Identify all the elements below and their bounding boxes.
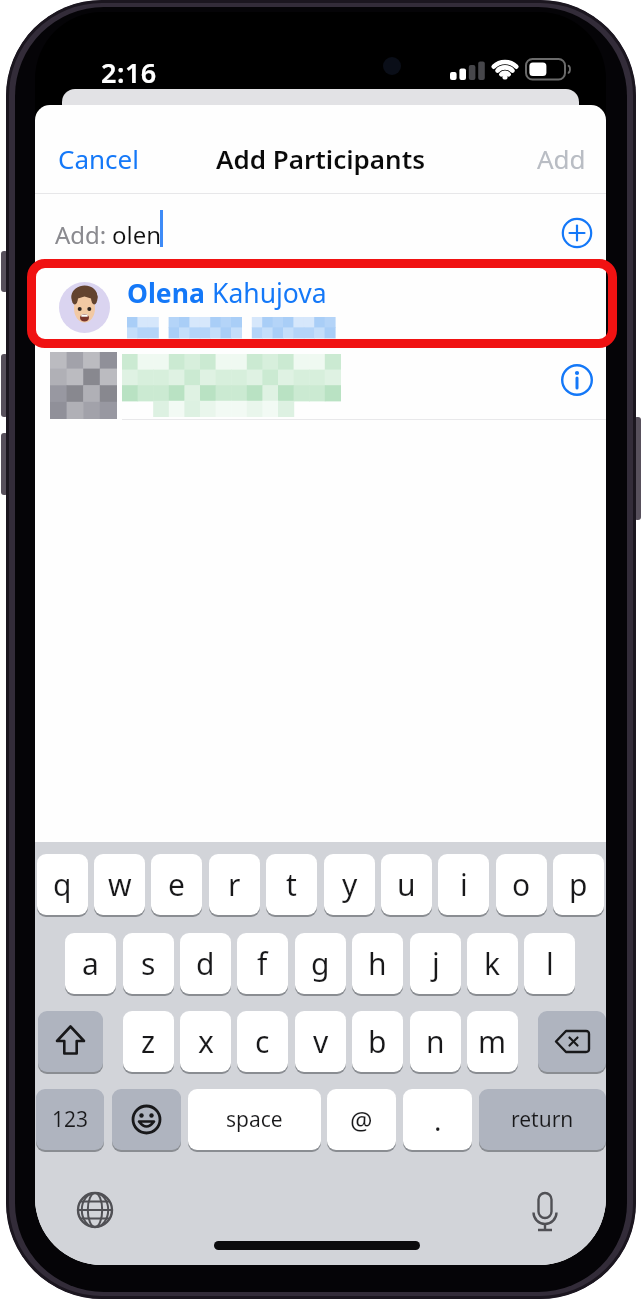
button[interactable]: y bbox=[324, 854, 375, 915]
staticText: Add: bbox=[55, 218, 107, 251]
staticText: 2:16 bbox=[101, 54, 157, 91]
button[interactable]: k bbox=[467, 933, 518, 994]
staticText: y bbox=[342, 864, 358, 905]
staticText: s bbox=[141, 943, 156, 984]
staticText: z bbox=[141, 1021, 156, 1062]
button[interactable]: b bbox=[352, 1011, 403, 1072]
button[interactable]: return bbox=[479, 1089, 606, 1150]
button[interactable] bbox=[35, 267, 606, 359]
staticText: a bbox=[82, 943, 99, 984]
staticText: i bbox=[460, 864, 468, 905]
staticText: t bbox=[286, 864, 297, 905]
staticText: d bbox=[196, 943, 215, 984]
button[interactable]: s bbox=[123, 933, 174, 994]
staticText: Olena bbox=[127, 275, 212, 311]
button[interactable]: Cancel bbox=[58, 141, 139, 176]
button[interactable]: x bbox=[180, 1011, 231, 1072]
staticText: x bbox=[198, 1021, 214, 1062]
staticText: u bbox=[397, 864, 416, 905]
button[interactable]: h bbox=[352, 933, 403, 994]
staticText: h bbox=[368, 943, 387, 984]
button[interactable]: c bbox=[237, 1011, 288, 1072]
staticText: m bbox=[478, 1021, 507, 1062]
button[interactable]: n bbox=[410, 1011, 461, 1072]
button[interactable]: w bbox=[94, 854, 145, 915]
staticText: e bbox=[168, 864, 185, 905]
button[interactable] bbox=[560, 363, 594, 397]
button[interactable] bbox=[538, 1011, 606, 1072]
staticText: j bbox=[432, 943, 440, 984]
staticText: b bbox=[368, 1021, 387, 1062]
button[interactable] bbox=[112, 1089, 181, 1150]
button[interactable]: Add bbox=[537, 141, 586, 175]
staticText: . bbox=[434, 1101, 442, 1139]
staticText: 123 bbox=[52, 1105, 89, 1134]
staticText: space bbox=[226, 1105, 283, 1134]
staticText: c bbox=[255, 1021, 270, 1062]
button[interactable]: f bbox=[237, 933, 288, 994]
button[interactable]: . bbox=[403, 1089, 472, 1150]
button[interactable] bbox=[38, 1011, 103, 1072]
button[interactable]: 123 bbox=[36, 1089, 104, 1150]
staticText: Cancel bbox=[58, 141, 139, 176]
staticText: f bbox=[257, 943, 268, 984]
staticText: q bbox=[53, 864, 72, 905]
button[interactable]: o bbox=[496, 854, 547, 915]
staticText: olen bbox=[112, 218, 162, 251]
staticText: @ bbox=[350, 1103, 373, 1137]
button[interactable]: j bbox=[410, 933, 461, 994]
staticText: Add bbox=[537, 141, 586, 175]
button[interactable]: g bbox=[295, 933, 346, 994]
button[interactable]: q bbox=[37, 854, 88, 915]
button[interactable] bbox=[560, 216, 594, 250]
button[interactable]: d bbox=[180, 933, 231, 994]
staticText: n bbox=[426, 1021, 445, 1062]
button[interactable]: u bbox=[381, 854, 432, 915]
staticText: o bbox=[512, 864, 531, 905]
button[interactable]: p bbox=[553, 854, 604, 915]
button[interactable]: e bbox=[151, 854, 202, 915]
button[interactable]: r bbox=[209, 854, 260, 915]
button[interactable]: m bbox=[467, 1011, 518, 1072]
staticText: return bbox=[511, 1105, 574, 1134]
staticText: r bbox=[228, 864, 241, 905]
button[interactable]: a bbox=[65, 933, 116, 994]
staticText: w bbox=[108, 864, 132, 905]
button[interactable]: z bbox=[123, 1011, 174, 1072]
button[interactable]: space bbox=[188, 1089, 321, 1150]
button[interactable]: @ bbox=[327, 1089, 396, 1150]
button[interactable]: v bbox=[295, 1011, 346, 1072]
staticText: g bbox=[311, 943, 330, 984]
button[interactable]: t bbox=[266, 854, 317, 915]
staticText: p bbox=[569, 864, 588, 905]
staticText: k bbox=[484, 943, 501, 984]
staticText: l bbox=[546, 943, 554, 984]
button[interactable] bbox=[35, 360, 606, 430]
staticText: Add Participants bbox=[216, 141, 426, 175]
staticText: v bbox=[313, 1021, 329, 1062]
staticText: Kahujova bbox=[212, 275, 327, 311]
button[interactable]: i bbox=[438, 854, 489, 915]
button[interactable]: l bbox=[524, 933, 575, 994]
